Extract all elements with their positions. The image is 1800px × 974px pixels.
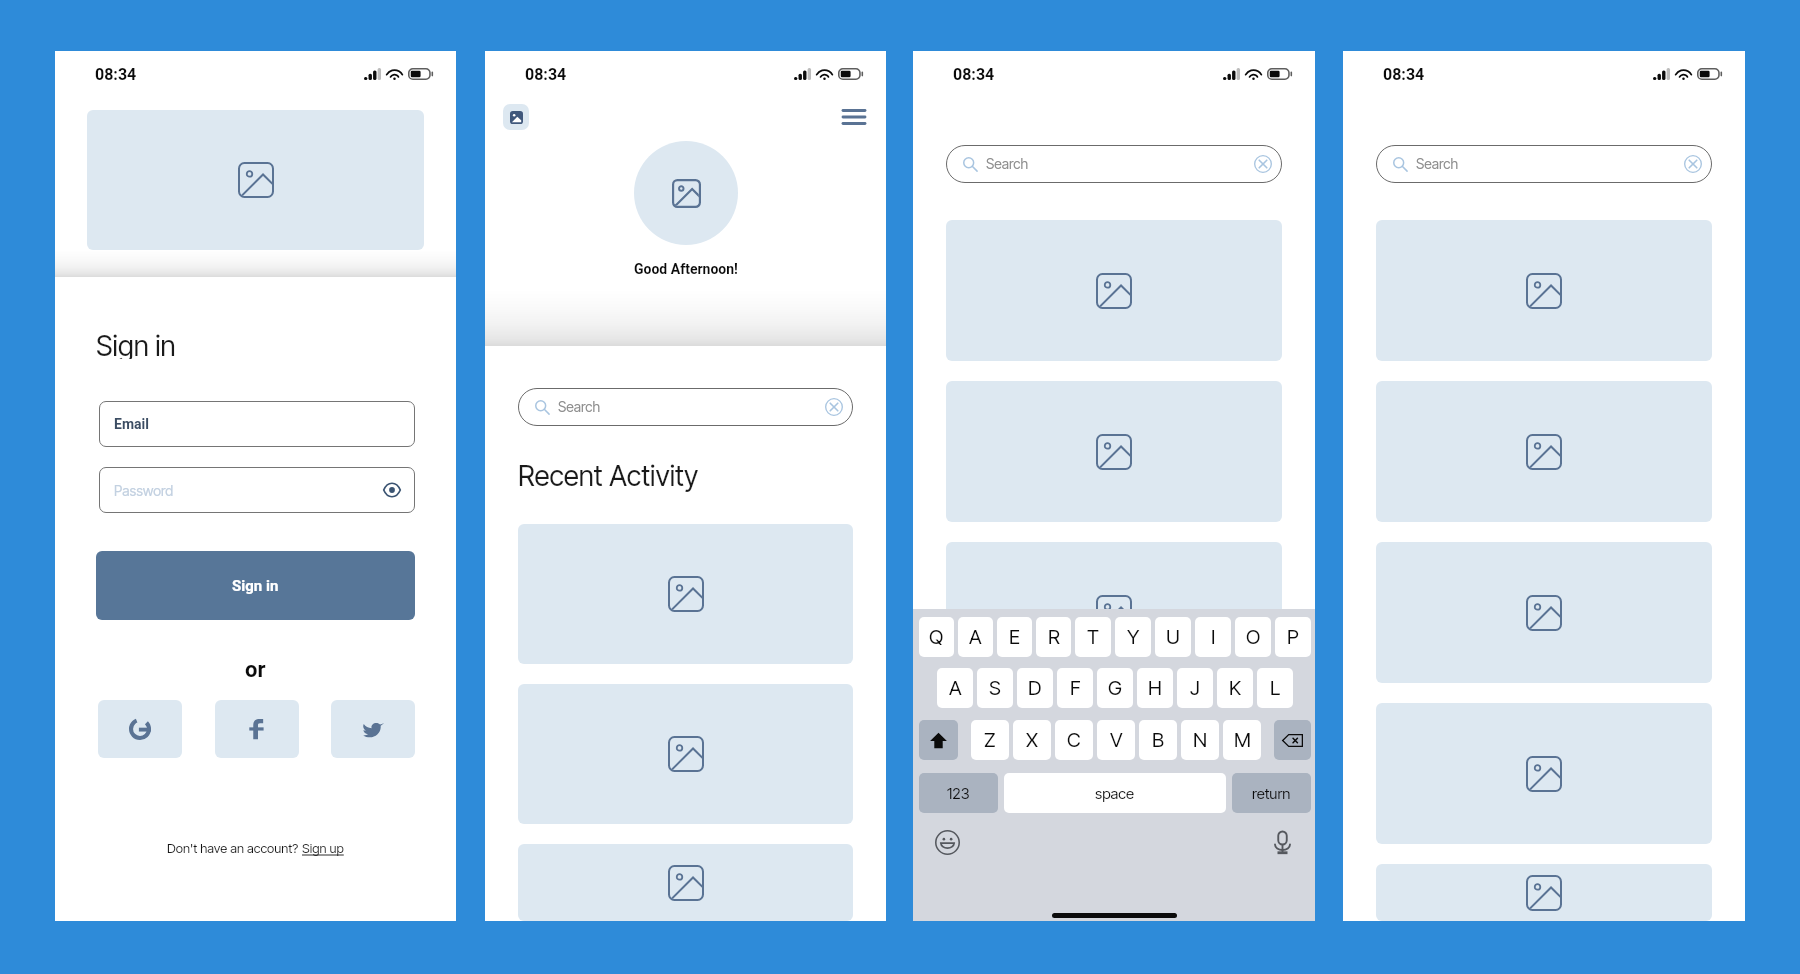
button[interactable]: 123	[919, 773, 998, 813]
staticText: Search	[986, 155, 1029, 172]
button[interactable]: return	[1232, 773, 1311, 813]
button[interactable]: V	[1097, 720, 1135, 760]
staticText: Don't have an account?	[167, 840, 302, 856]
staticText: L	[1270, 676, 1281, 700]
staticText: Search	[1416, 155, 1459, 172]
staticText: C	[1067, 728, 1081, 752]
staticText: P	[1287, 625, 1299, 649]
button[interactable]: J	[1177, 668, 1213, 708]
button[interactable]: O	[1235, 617, 1271, 657]
button[interactable]: Z	[971, 720, 1009, 760]
staticText: T	[1087, 625, 1099, 649]
button[interactable]: C	[1055, 720, 1093, 760]
button[interactable]: A	[937, 668, 973, 708]
staticText: R	[1048, 625, 1060, 649]
staticText: S	[989, 676, 1001, 700]
button[interactable]: D	[1017, 668, 1053, 708]
staticText: A	[969, 625, 982, 649]
staticText: Sign in	[96, 329, 176, 359]
staticText: 08:34	[1383, 65, 1425, 84]
button[interactable]: T	[1075, 617, 1111, 657]
button[interactable]: I	[1195, 617, 1231, 657]
button[interactable]	[1376, 381, 1712, 522]
staticText: return	[1252, 784, 1291, 802]
staticText: M	[1234, 728, 1251, 752]
button[interactable]: Password	[99, 467, 415, 513]
button[interactable]: P	[1275, 617, 1311, 657]
staticText: J	[1190, 676, 1200, 700]
staticText: Sign in	[232, 577, 279, 595]
button[interactable]: G	[1097, 668, 1133, 708]
button[interactable]: Sign up	[302, 840, 344, 856]
staticText: G	[1108, 676, 1122, 700]
staticText: Email	[114, 416, 149, 432]
staticText: 123	[947, 784, 970, 802]
button[interactable]: Emoji keyboard	[934, 829, 960, 855]
button[interactable]	[946, 220, 1282, 361]
button[interactable]: L	[1257, 668, 1293, 708]
button[interactable]: X	[1013, 720, 1051, 760]
staticText: Recent Activity	[518, 459, 699, 493]
staticText: F	[1070, 676, 1081, 700]
button[interactable]	[518, 524, 853, 664]
button[interactable]: Search	[1376, 145, 1712, 183]
button[interactable]: Shift	[919, 720, 958, 760]
staticText: Good Afternoon!	[634, 261, 738, 277]
staticText: N	[1193, 728, 1208, 752]
button[interactable]	[946, 381, 1282, 522]
staticText: I	[1211, 625, 1216, 649]
button[interactable]	[1376, 542, 1712, 683]
staticText: 08:34	[525, 65, 567, 84]
staticText: B	[1152, 728, 1165, 752]
staticText: A	[949, 676, 962, 700]
button[interactable]: Search	[518, 388, 853, 426]
button[interactable]: Menu	[841, 104, 867, 130]
button[interactable]: N	[1181, 720, 1219, 760]
button[interactable]: E	[997, 617, 1032, 657]
staticText: X	[1026, 728, 1038, 752]
button[interactable]: Y	[1115, 617, 1151, 657]
button[interactable]: Dictation	[1269, 829, 1295, 855]
button[interactable]: Sign in with Google	[98, 700, 182, 758]
button[interactable]: M	[1223, 720, 1261, 760]
button[interactable]: F	[1057, 668, 1093, 708]
staticText: space	[1095, 784, 1135, 802]
button[interactable]: space	[1004, 773, 1226, 813]
staticText: Q	[929, 625, 944, 649]
staticText: O	[1246, 625, 1261, 649]
button[interactable]: S	[977, 668, 1013, 708]
staticText: E	[1009, 625, 1021, 649]
staticText: 08:34	[95, 65, 137, 84]
staticText: Search	[558, 398, 601, 415]
button[interactable]: H	[1137, 668, 1173, 708]
button[interactable]: Profile	[503, 104, 529, 130]
staticText: K	[1229, 676, 1242, 700]
button[interactable]: Sign in	[96, 551, 415, 620]
button[interactable]	[518, 844, 853, 921]
button[interactable]: Email	[99, 401, 415, 447]
button[interactable]	[1376, 220, 1712, 361]
button[interactable]: R	[1036, 617, 1071, 657]
staticText: 08:34	[953, 65, 995, 84]
staticText: U	[1166, 625, 1180, 649]
staticText: Password	[114, 482, 174, 499]
button[interactable]	[1376, 864, 1712, 921]
button[interactable]	[946, 542, 1282, 683]
button[interactable]: A	[958, 617, 993, 657]
button[interactable]: Search	[946, 145, 1282, 183]
button[interactable]: Backspace	[1274, 720, 1311, 760]
button[interactable]: U	[1155, 617, 1191, 657]
button[interactable]	[1376, 703, 1712, 844]
button[interactable]: Sign in with Twitter	[331, 700, 415, 758]
button[interactable]: Sign in with Facebook	[215, 700, 299, 758]
button[interactable]: K	[1217, 668, 1253, 708]
staticText: Z	[984, 728, 996, 752]
button[interactable]	[518, 684, 853, 824]
staticText: or	[245, 657, 266, 683]
staticText: Y	[1127, 625, 1140, 649]
button[interactable]	[634, 141, 738, 245]
button[interactable]: B	[1139, 720, 1177, 760]
button[interactable]: Q	[919, 617, 954, 657]
staticText: D	[1028, 676, 1042, 700]
button[interactable]	[87, 110, 424, 250]
